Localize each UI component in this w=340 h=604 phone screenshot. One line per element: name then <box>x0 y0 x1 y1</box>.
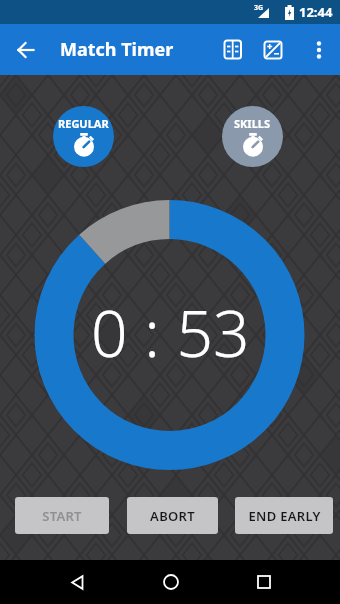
staticText: 0 : 53 <box>91 289 250 376</box>
staticText: 3G <box>254 3 264 13</box>
staticText: ABORT <box>150 507 195 525</box>
staticText: END EARLY <box>248 507 321 525</box>
button[interactable] <box>124 560 217 604</box>
button[interactable]: REGULAR <box>53 106 114 167</box>
button[interactable] <box>10 34 42 66</box>
button[interactable]: SKILLS <box>222 106 283 167</box>
button[interactable] <box>300 24 337 75</box>
button[interactable]: START <box>15 497 109 534</box>
button[interactable] <box>217 560 310 604</box>
button[interactable]: END EARLY <box>235 497 333 534</box>
staticText: REGULAR <box>58 116 109 131</box>
staticText: START <box>42 507 82 525</box>
button[interactable]: ABORT <box>127 497 218 534</box>
staticText: Match Timer <box>60 37 174 62</box>
button[interactable] <box>31 560 124 604</box>
staticText: 12:44 <box>299 3 333 21</box>
button[interactable] <box>213 24 253 75</box>
button[interactable] <box>253 24 293 75</box>
staticText: SKILLS <box>234 116 271 131</box>
